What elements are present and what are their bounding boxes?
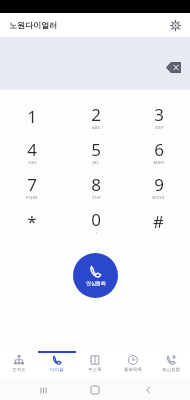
button[interactable]: 2 <box>64 99 127 134</box>
staticText: 3 <box>154 103 164 126</box>
button[interactable]: 9 <box>127 169 190 204</box>
button[interactable]: 1 <box>0 99 64 134</box>
staticText: 통화목록 <box>124 367 142 373</box>
staticText: 8 <box>91 173 101 196</box>
button[interactable]: 최신전환 <box>152 351 190 379</box>
staticText: 노원다이얼러 <box>9 20 57 30</box>
staticText: 4 <box>27 138 37 161</box>
staticText: 9 <box>154 173 164 196</box>
button[interactable]: 8 <box>64 169 127 204</box>
button[interactable]: 3 <box>127 99 190 134</box>
button[interactable]: 7 <box>0 169 64 204</box>
button[interactable]: 주소록 <box>76 351 114 379</box>
staticText: ABC <box>92 125 101 130</box>
button[interactable]: Backspace <box>162 59 184 75</box>
staticText: DEF <box>155 125 164 130</box>
button[interactable]: Recents <box>33 380 53 400</box>
button[interactable]: 안심통화 <box>73 253 118 298</box>
button[interactable]: 4 <box>0 134 64 169</box>
staticText: 다이얼 <box>50 367 64 373</box>
button[interactable]: 5 <box>64 134 127 169</box>
staticText: WXYZ <box>152 195 165 200</box>
staticText: 6 <box>154 138 164 161</box>
staticText: * <box>27 210 37 233</box>
staticText: 7 <box>27 173 37 196</box>
staticText: 1 <box>27 105 37 128</box>
staticText: 조직도 <box>12 367 26 373</box>
staticText: GHI <box>28 160 37 165</box>
button[interactable]: 다이얼 <box>38 351 76 379</box>
button[interactable]: Home <box>85 380 105 400</box>
staticText: # <box>153 210 164 233</box>
staticText: 주소록 <box>88 367 102 373</box>
button[interactable]: Settings <box>167 17 183 33</box>
button[interactable]: 0 <box>64 204 127 239</box>
button[interactable]: * <box>0 204 64 239</box>
button[interactable]: 조직도 <box>0 351 38 379</box>
staticText: 0 <box>91 208 101 231</box>
staticText: 2 <box>91 103 101 126</box>
staticText: JKL <box>92 160 100 165</box>
staticText: 안심통화 <box>86 280 106 286</box>
button[interactable]: 통화목록 <box>114 351 152 379</box>
staticText: TUV <box>92 195 101 200</box>
staticText: MNO <box>153 160 165 165</box>
staticText: + <box>95 230 98 235</box>
staticText: 5 <box>91 138 101 161</box>
button[interactable]: Back <box>138 380 158 400</box>
button[interactable]: 6 <box>127 134 190 169</box>
button[interactable]: # <box>127 204 190 239</box>
staticText: PQRS <box>26 195 38 200</box>
staticText: 최신전환 <box>162 367 180 373</box>
